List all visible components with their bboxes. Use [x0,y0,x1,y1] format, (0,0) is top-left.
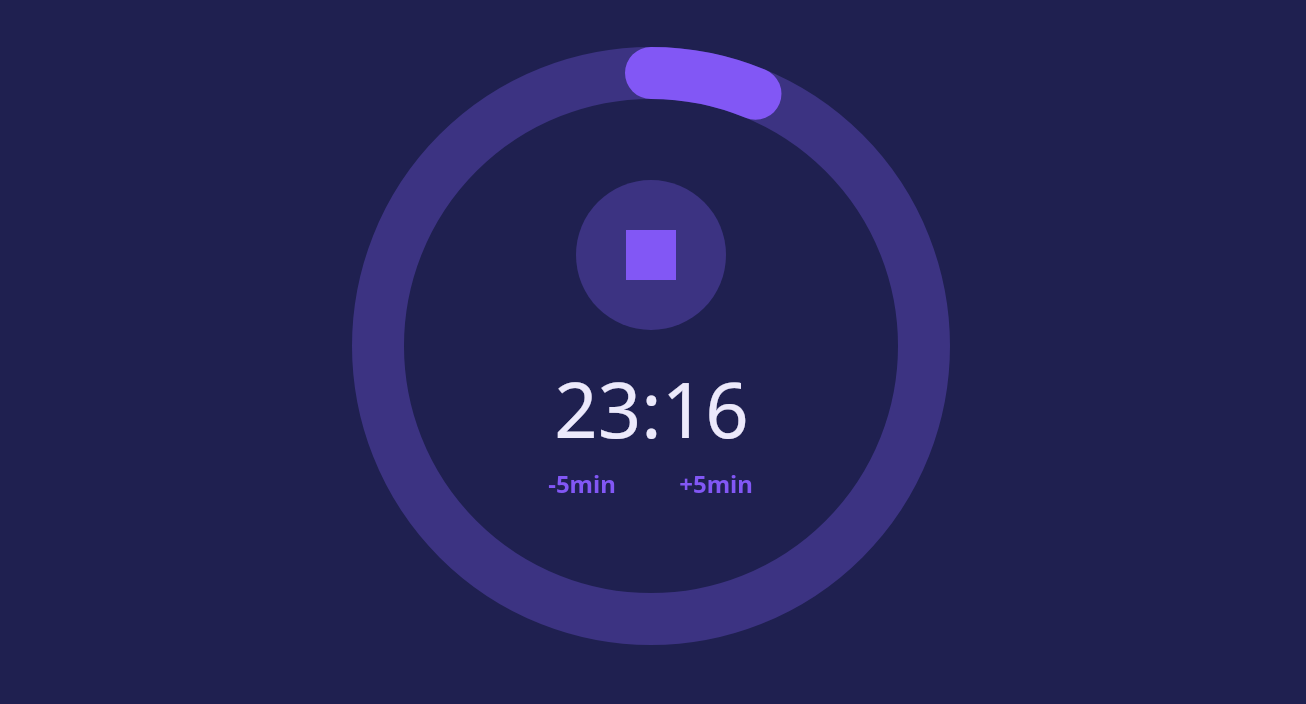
button[interactable]: -5min [534,462,629,504]
staticText: +5min [679,467,753,500]
button[interactable]: +5min [667,462,764,504]
button[interactable]: Stop timer [576,180,726,330]
staticText: -5min [548,467,616,500]
staticText: 23:16 [554,357,749,449]
